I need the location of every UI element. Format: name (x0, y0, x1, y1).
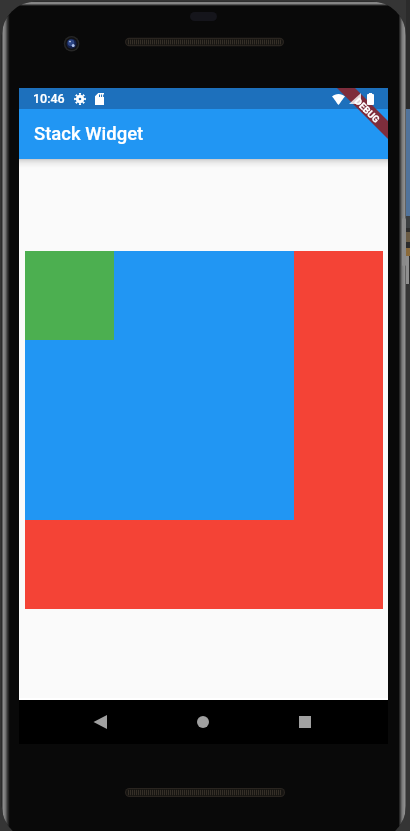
staticText: DEBUG (353, 96, 382, 125)
button[interactable]: Recent apps (275, 700, 335, 744)
staticText: 10:46 (33, 91, 65, 106)
staticText: Stack Widget (34, 123, 144, 145)
button[interactable]: Back (70, 700, 130, 744)
button[interactable]: Home (173, 700, 233, 744)
